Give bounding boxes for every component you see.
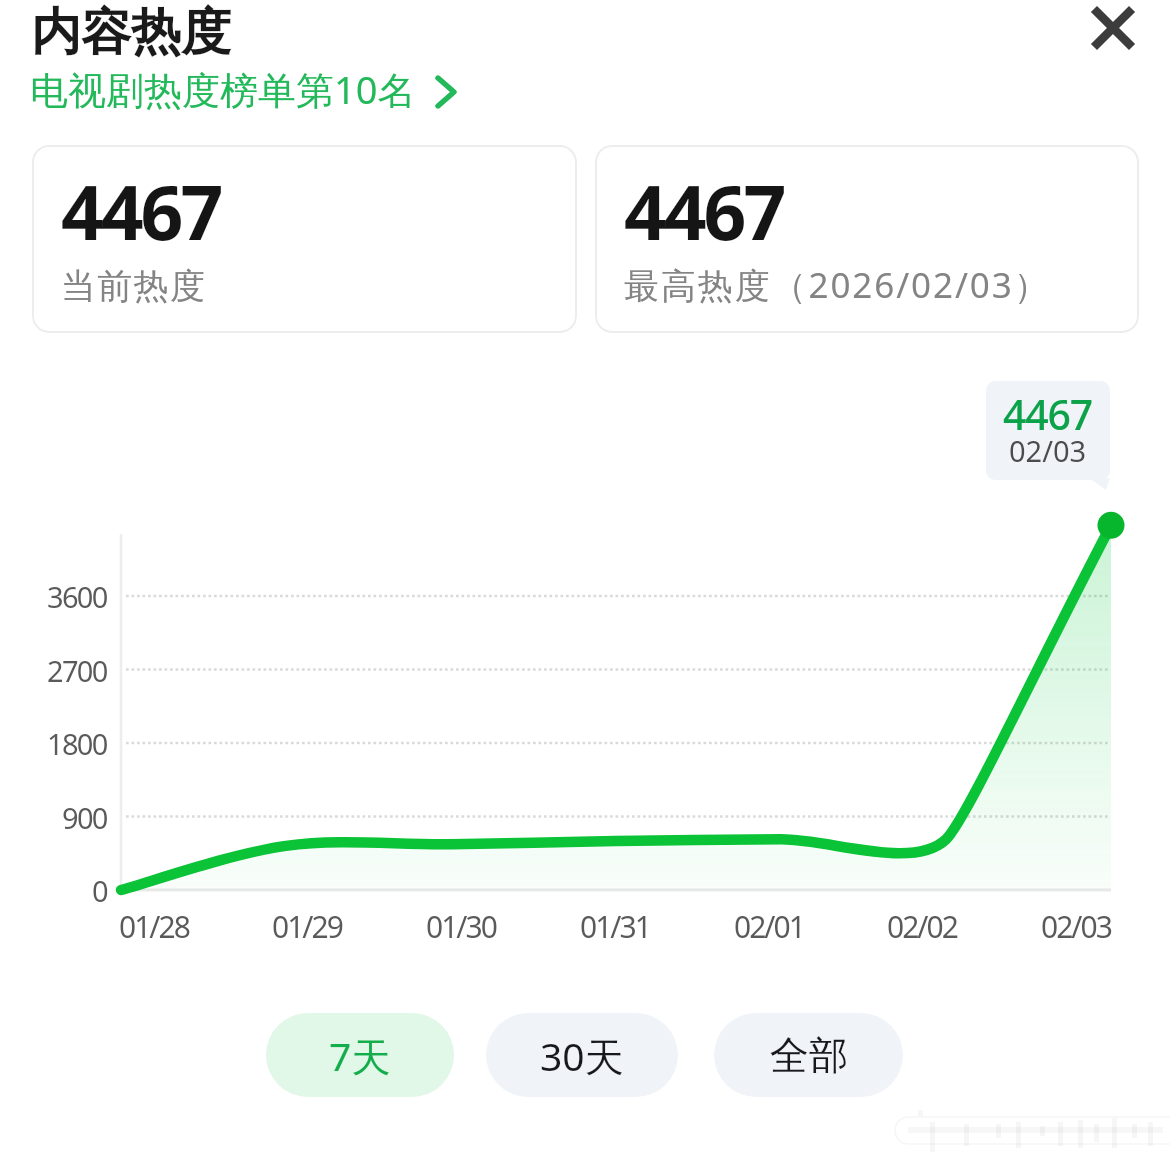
staticText: 02/03 — [1009, 431, 1087, 467]
staticText: 1800 — [47, 724, 107, 763]
staticText: 当前热度 — [61, 264, 207, 308]
staticText: 3600 — [47, 577, 107, 616]
button[interactable]: 电视剧热度榜单第10名 — [30, 63, 457, 115]
staticText: 30天 — [540, 1029, 624, 1082]
staticText: 2700 — [47, 651, 107, 690]
staticText: 02/02 — [887, 906, 957, 947]
button[interactable]: 30天 — [486, 1013, 678, 1097]
staticText: 01/31 — [580, 906, 650, 947]
staticText: 01/29 — [272, 906, 342, 947]
staticText: 4467 — [624, 160, 784, 262]
staticText: 01/30 — [426, 906, 496, 947]
staticText: 4467 — [61, 160, 221, 262]
staticText: 电视剧热度榜单第10名 — [30, 63, 416, 115]
staticText: 最高热度（2026/02/03） — [624, 261, 1051, 309]
staticText: 02/01 — [734, 906, 804, 947]
staticText: 02/03 — [1041, 906, 1111, 947]
staticText: 全部 — [770, 1031, 848, 1080]
staticText: 内容热度 — [31, 1, 231, 64]
staticText: 01/28 — [119, 906, 189, 947]
staticText: 4467 — [1003, 386, 1093, 434]
button[interactable]: 4467 — [595, 145, 1139, 333]
staticText: 900 — [62, 798, 107, 837]
button[interactable]: Close — [1075, 0, 1151, 66]
button[interactable]: 全部 — [714, 1013, 903, 1097]
button[interactable]: 4467 — [32, 145, 577, 333]
button[interactable]: 7天 — [266, 1013, 454, 1097]
staticText: 7天 — [329, 1029, 391, 1082]
staticText: 0 — [92, 871, 107, 910]
